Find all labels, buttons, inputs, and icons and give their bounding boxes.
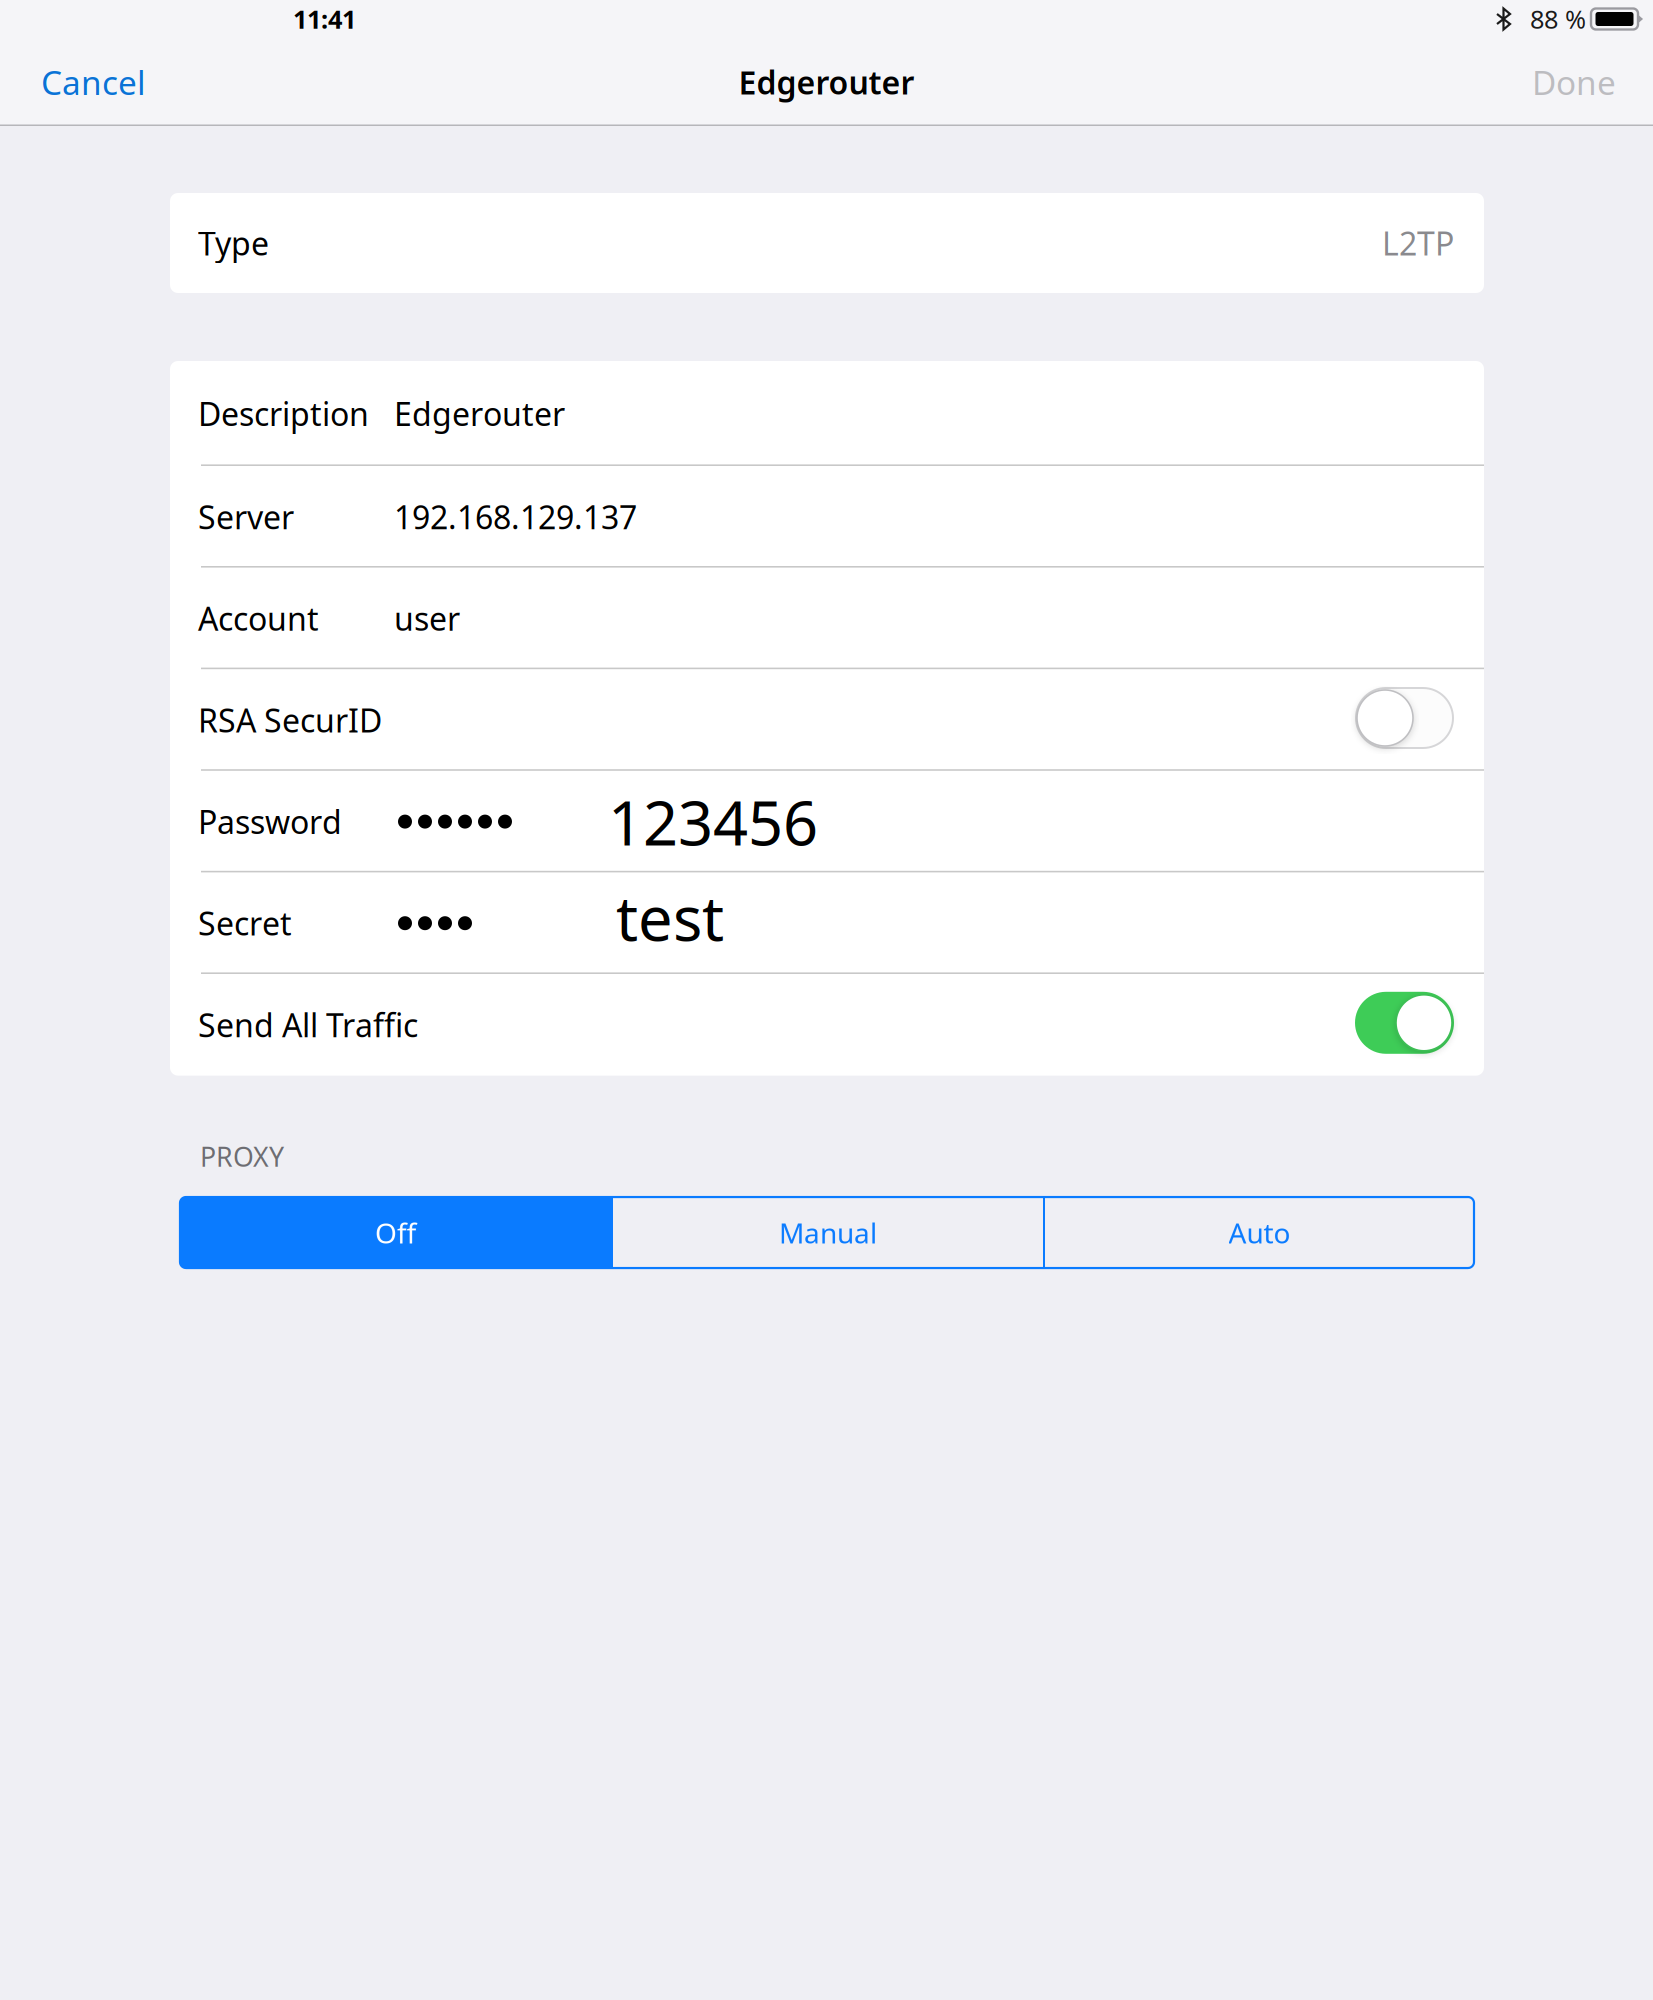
staticText: test	[616, 876, 724, 958]
staticText: Cancel	[41, 60, 146, 104]
staticText: Password	[198, 800, 342, 843]
staticText: Done	[1532, 60, 1616, 104]
button[interactable]: Send All Traffic	[1356, 993, 1453, 1057]
staticText: 123456	[608, 781, 818, 862]
staticText: Account	[198, 597, 319, 640]
button[interactable]: RSA SecurID	[1356, 688, 1453, 752]
staticText: 192.168.129.137	[394, 496, 637, 538]
staticText: PROXY	[200, 1139, 284, 1174]
staticText: Secret	[198, 902, 292, 944]
staticText: user	[394, 597, 460, 640]
staticText: L2TP	[1382, 222, 1454, 264]
staticText: Manual	[779, 1214, 877, 1251]
staticText: Auto	[1228, 1214, 1290, 1251]
button[interactable]: Auto	[1045, 1197, 1474, 1268]
button[interactable]: Manual	[613, 1197, 1043, 1268]
staticText: Type	[198, 222, 269, 264]
button[interactable]: Done	[1496, 40, 1653, 123]
button[interactable]: Off	[180, 1197, 611, 1268]
staticText: Edgerouter	[394, 392, 565, 435]
staticText: Edgerouter	[738, 61, 914, 103]
staticText: Server	[198, 496, 294, 538]
staticText: Off	[375, 1214, 416, 1251]
staticText: 11:41	[293, 2, 356, 36]
staticText: 88 %	[1530, 2, 1586, 36]
button[interactable]: Cancel	[0, 40, 182, 123]
staticText: Description	[198, 392, 369, 435]
staticText: Send All Traffic	[198, 1004, 418, 1046]
staticText: RSA SecurID	[198, 699, 382, 741]
